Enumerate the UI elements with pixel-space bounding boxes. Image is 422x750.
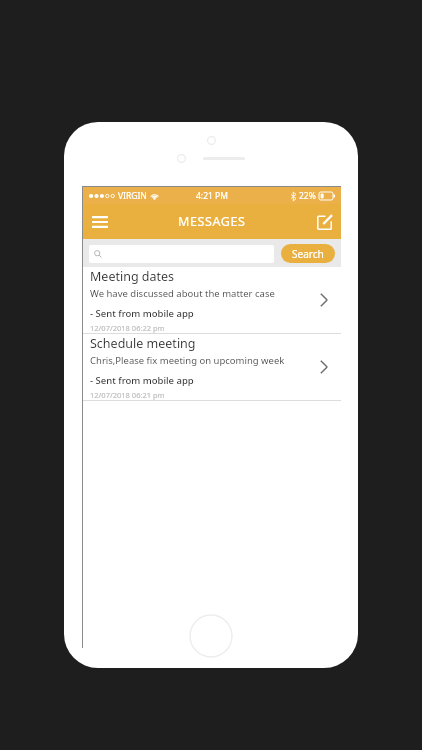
staticText: VIRGIN: [118, 190, 147, 202]
button[interactable]: Schedule meeting: [83, 334, 341, 401]
button[interactable]: [89, 245, 274, 263]
staticText: 12/07/2018 06:21 pm: [90, 390, 165, 400]
staticText: Meeting dates: [90, 268, 175, 285]
staticText: - Sent from mobile app: [90, 307, 194, 320]
staticText: Search: [292, 247, 324, 261]
button[interactable]: Meeting dates: [83, 267, 341, 334]
staticText: Schedule meeting: [90, 335, 196, 352]
staticText: We have discussed about the matter case: [90, 287, 275, 300]
button[interactable]: Home: [189, 614, 233, 658]
button[interactable]: Compose new message: [307, 205, 341, 239]
staticText: MESSAGES: [178, 213, 246, 230]
staticText: - Sent from mobile app: [90, 374, 194, 387]
staticText: 22%: [299, 190, 316, 202]
staticText: Chris,Please fix meeting on upcoming wee…: [90, 354, 285, 367]
staticText: 4:21 PM: [196, 190, 228, 202]
staticText: 12/07/2018 06:22 pm: [90, 323, 165, 333]
button[interactable]: Search: [281, 244, 335, 263]
button[interactable]: Open navigation menu: [83, 205, 117, 239]
